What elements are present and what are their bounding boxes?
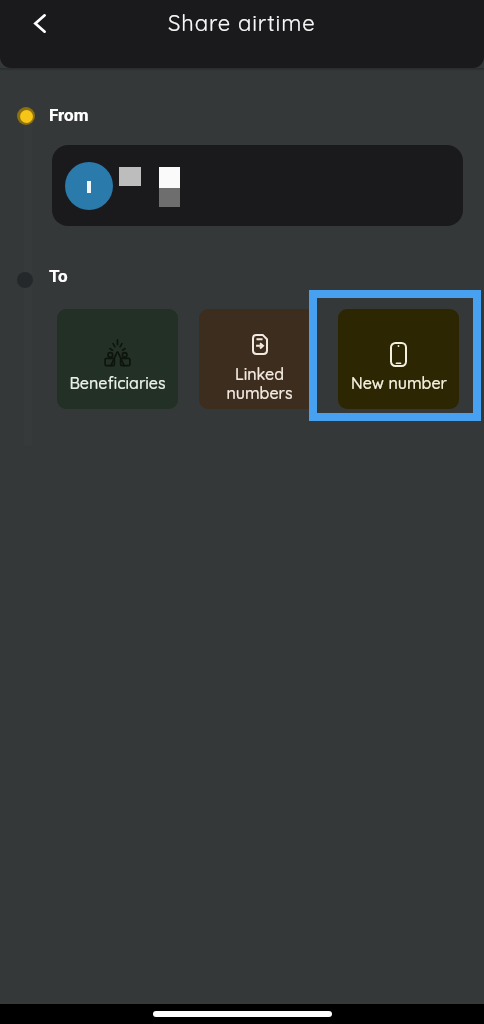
staticText: To	[49, 266, 68, 286]
button[interactable]: New number	[338, 309, 459, 409]
button[interactable]: Beneficiaries	[57, 309, 178, 409]
staticText: Share airtime	[168, 9, 316, 37]
button[interactable]: Back	[16, 0, 63, 47]
staticText: From	[49, 105, 89, 125]
staticText: New number	[351, 373, 447, 393]
button[interactable]	[52, 145, 463, 226]
staticText: Linked numbers	[226, 364, 293, 403]
button[interactable]: Linked numbers	[199, 309, 320, 409]
staticText: Beneficiaries	[69, 373, 166, 393]
